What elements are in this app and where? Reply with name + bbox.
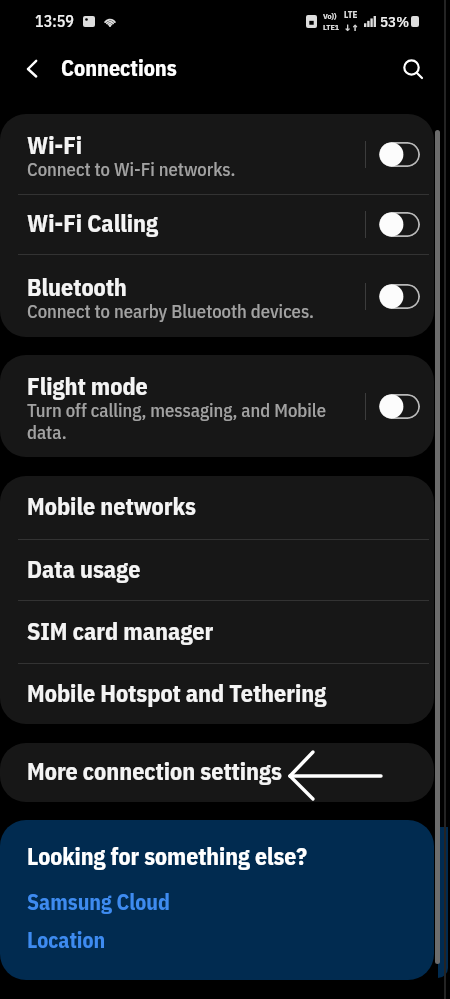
staticText: LTE1	[323, 22, 340, 32]
button[interactable]: Search	[390, 46, 436, 92]
button[interactable]: Wi-Fi	[0, 114, 434, 194]
staticText: Mobile Hotspot and Tethering	[27, 677, 327, 708]
staticText: Bluetooth	[27, 271, 127, 302]
button[interactable]	[379, 394, 420, 419]
button[interactable]: SIM card manager	[0, 601, 434, 663]
button[interactable]	[379, 284, 420, 309]
staticText: Mobile networks	[27, 490, 196, 521]
staticText: Connect to nearby Bluetooth devices.	[27, 299, 314, 323]
staticText: 53%	[380, 12, 410, 32]
button[interactable]: Samsung Cloud	[27, 888, 170, 916]
staticText: Wi-Fi	[27, 129, 83, 160]
staticText: Wi-Fi Calling	[27, 207, 159, 238]
staticText: Turn off calling, messaging, and Mobile …	[27, 398, 327, 444]
button[interactable]	[379, 142, 420, 167]
staticText: ↓↑	[344, 22, 359, 34]
button[interactable]: Flight mode	[0, 355, 434, 457]
button[interactable]: Wi-Fi Calling	[0, 195, 434, 254]
staticText: Vo))	[323, 11, 337, 21]
staticText: Connect to Wi-Fi networks.	[27, 157, 236, 181]
staticText: Flight mode	[27, 370, 148, 401]
staticText: LTE	[344, 9, 358, 21]
button[interactable]: Mobile Hotspot and Tethering	[0, 664, 434, 724]
button[interactable]: Mobile networks	[0, 476, 434, 539]
staticText: 13:59	[35, 11, 75, 32]
staticText: Data usage	[27, 553, 141, 584]
staticText: Looking for something else?	[27, 841, 308, 872]
staticText: Connections	[61, 53, 177, 82]
staticText: SIM card manager	[27, 615, 214, 646]
button[interactable]: Navigate up	[8, 46, 54, 92]
button[interactable]: Data usage	[0, 540, 434, 600]
button[interactable]	[379, 212, 420, 237]
staticText: More connection settings	[27, 755, 282, 786]
button[interactable]: Location	[27, 926, 106, 954]
button[interactable]: Bluetooth	[0, 255, 434, 337]
button[interactable]: More connection settings	[0, 743, 434, 802]
